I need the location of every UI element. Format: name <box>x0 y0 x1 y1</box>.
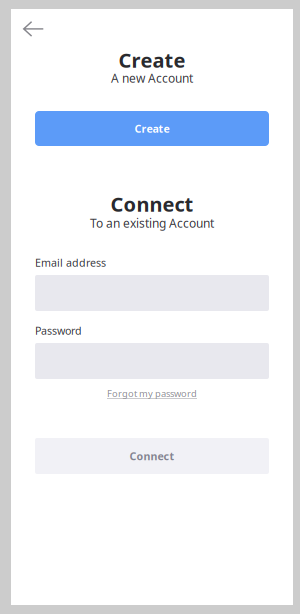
staticText: Password <box>35 323 82 338</box>
staticText: Email address <box>35 255 106 270</box>
staticText: To an existing Account <box>90 215 214 231</box>
staticText: A new Account <box>111 70 193 86</box>
staticText: Create <box>118 47 185 73</box>
staticText: Connect <box>129 449 174 463</box>
button[interactable]: Forgot my password <box>35 389 269 398</box>
button[interactable]: Back <box>11 14 55 44</box>
staticText: Connect <box>110 191 193 217</box>
staticText: Create <box>134 121 169 136</box>
button[interactable]: Create <box>35 111 269 146</box>
staticText: Forgot my password <box>107 387 197 400</box>
button[interactable]: Connect <box>35 438 269 474</box>
